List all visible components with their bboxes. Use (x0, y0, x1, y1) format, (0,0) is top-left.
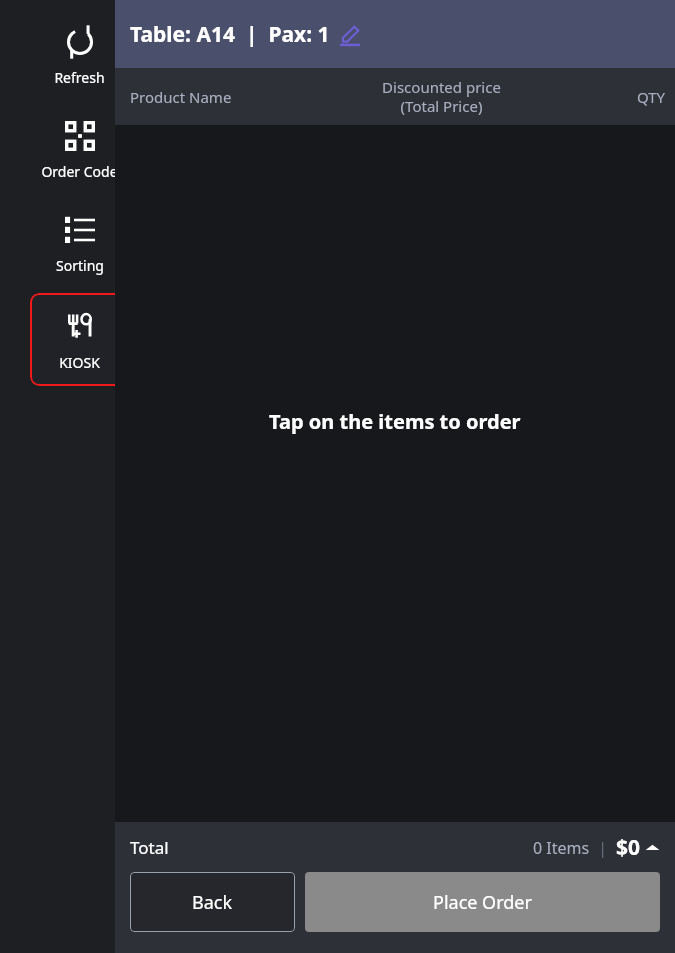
staticText: Tap on the items to order (269, 408, 521, 435)
button[interactable]: Refresh (30, 11, 129, 99)
staticText: Product Name (130, 87, 232, 107)
staticText: Place Order (433, 890, 532, 915)
button[interactable]: Sorting (30, 199, 129, 287)
staticText: QTY (637, 87, 666, 107)
staticText: Total (130, 836, 169, 859)
button[interactable]: Place Order (305, 872, 660, 932)
staticText: $0 (616, 833, 641, 862)
staticText: Back (192, 890, 233, 915)
staticText: KIOSK (59, 353, 100, 372)
staticText: Table: A14 | Pax: 1 (130, 20, 330, 49)
staticText: Order Code (41, 162, 118, 181)
button[interactable]: Expand total details (645, 840, 660, 855)
staticText: Discounted price (Total Price) (382, 77, 501, 116)
button[interactable]: Order Code (30, 105, 129, 193)
button[interactable]: Back (130, 872, 295, 932)
staticText: Sorting (56, 256, 104, 275)
button[interactable]: KIOSK (30, 293, 129, 386)
button[interactable]: Edit table and pax (339, 24, 361, 46)
staticText: 0 Items (533, 837, 590, 859)
staticText: | (590, 837, 616, 859)
staticText: Refresh (54, 68, 105, 87)
